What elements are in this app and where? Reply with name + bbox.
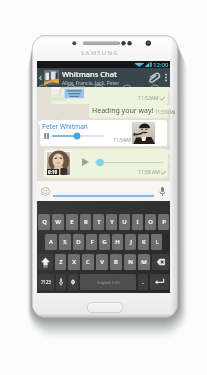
button[interactable]: Z (55, 254, 66, 270)
button[interactable]: J (125, 234, 136, 250)
staticText: 12:00 (153, 61, 169, 68)
staticText: SAMSUNG (81, 49, 119, 57)
staticText: Z (59, 258, 63, 266)
staticText: W (55, 218, 61, 226)
staticText: B (114, 258, 118, 266)
button[interactable]: W (52, 214, 64, 230)
staticText: F (90, 238, 94, 246)
button[interactable]: Y (106, 214, 117, 230)
button[interactable]: Play (79, 156, 91, 168)
button[interactable]: X (68, 254, 80, 270)
staticText: Peter Whitman (42, 122, 88, 131)
staticText: U (122, 218, 127, 226)
button[interactable]: I (132, 214, 143, 230)
button[interactable]: Language (68, 274, 78, 290)
button[interactable]: N (124, 254, 136, 270)
button[interactable]: V (96, 254, 108, 270)
button[interactable]: Voice input (56, 274, 66, 290)
staticText: X (72, 258, 76, 266)
staticText: ?123 (41, 279, 51, 285)
staticText: 11:54AM (113, 137, 134, 144)
staticText: English (US) (97, 280, 120, 285)
button[interactable]: U (119, 214, 130, 230)
button[interactable]: L (151, 234, 162, 250)
staticText: P (162, 218, 166, 226)
staticText: Alice, Francis, Jack, Peter (62, 80, 120, 87)
staticText: Y (110, 218, 114, 226)
button[interactable]: C (82, 254, 94, 270)
button[interactable]: More options (161, 68, 170, 87)
staticText: I (136, 218, 139, 226)
button[interactable]: 11:52AM (51, 87, 171, 104)
button[interactable]: K (138, 234, 149, 250)
button[interactable]: Heading your way! (89, 104, 171, 118)
button[interactable]: . (138, 274, 148, 290)
button[interactable]: G (99, 234, 110, 250)
button[interactable]: M (138, 254, 150, 270)
button[interactable]: R (80, 214, 91, 230)
button[interactable]: Enter (150, 274, 169, 290)
button[interactable]: English (US) (80, 274, 136, 290)
staticText: N (128, 258, 133, 266)
button[interactable]: O (145, 214, 156, 230)
button[interactable]: Back (37, 68, 44, 87)
button[interactable]: Shift (38, 254, 53, 270)
button[interactable]: Group photo (44, 70, 59, 85)
button[interactable]: S (59, 234, 71, 250)
button[interactable]: E (66, 214, 78, 230)
button[interactable]: Peter Whitman (37, 120, 167, 146)
staticText: 0:19 (48, 169, 57, 175)
staticText: A (49, 238, 53, 246)
button[interactable]: Backspace (152, 254, 169, 270)
staticText: V (100, 258, 104, 266)
staticText: R (84, 218, 88, 226)
button[interactable]: P (158, 214, 169, 230)
staticText: E (70, 218, 74, 226)
staticText: C (86, 258, 90, 266)
button[interactable]: Voice message (154, 183, 170, 199)
staticText: G (102, 238, 107, 246)
staticText: . (142, 278, 144, 286)
button[interactable]: Home (87, 302, 123, 313)
staticText: T (97, 218, 101, 226)
staticText: L (155, 238, 159, 246)
button[interactable]: D (73, 234, 84, 250)
button[interactable]: B (110, 254, 122, 270)
button[interactable]: F (86, 234, 97, 250)
button[interactable]: H (112, 234, 123, 250)
button[interactable]: Attach (148, 68, 161, 87)
button[interactable]: Pause (42, 131, 51, 141)
staticText: M (141, 258, 147, 266)
button[interactable]: 0:19 (44, 149, 171, 178)
button[interactable]: ?123 (38, 274, 54, 290)
button[interactable]: Q (38, 214, 50, 230)
staticText: O (148, 218, 153, 226)
button[interactable]: A (45, 234, 57, 250)
button[interactable]: T (93, 214, 104, 230)
staticText: Heading your way! (92, 106, 154, 116)
staticText: K (142, 238, 146, 246)
staticText: 11:58 AM (138, 169, 160, 176)
staticText: S (63, 238, 67, 246)
staticText: J (130, 238, 132, 246)
staticText: H (115, 238, 120, 246)
staticText: Q (42, 218, 47, 226)
button[interactable]: Emoji (37, 183, 53, 199)
staticText: Whitmans Chat (62, 69, 117, 79)
staticText: 11:53AM (155, 109, 174, 115)
staticText: 11:52AM (138, 95, 159, 102)
staticText: D (76, 238, 81, 246)
